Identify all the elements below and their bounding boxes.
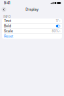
button[interactable]: Back: [1, 7, 6, 12]
button[interactable]: Text: [2, 18, 62, 23]
staticText: 80%: [52, 29, 59, 33]
staticText: Display: [25, 7, 38, 12]
staticText: Bold: [4, 24, 11, 28]
staticText: Text: [4, 19, 11, 23]
staticText: Reset: [4, 34, 13, 38]
button[interactable]: Bold text: [56, 25, 60, 27]
staticText: Scale: [4, 29, 13, 33]
staticText: 17: [56, 19, 59, 23]
staticText: INFO: [3, 15, 10, 19]
button[interactable]: Reset: [2, 34, 62, 39]
button[interactable]: Scale: [2, 29, 62, 34]
staticText: 9:41: [4, 1, 11, 5]
